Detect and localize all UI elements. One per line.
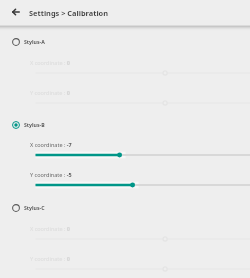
staticText: Stylus-C [24,204,45,211]
staticText: Stylus-A [24,38,45,45]
staticText: Stylus-B [24,121,45,128]
button[interactable]: Stylus-B [0,116,250,134]
button[interactable] [0,179,250,191]
staticText: Settings > Calibration [29,8,109,18]
staticText: Y coordinate : 0 [30,89,70,96]
button[interactable]: Stylus-A [0,33,250,51]
staticText: Y coordinate : 0 [30,255,70,262]
staticText: X coordinate : -7 [30,141,72,148]
staticText: Y coordinate : -5 [30,171,72,178]
staticText: X coordinate : 0 [30,225,70,232]
button[interactable] [0,149,250,161]
staticText: X coordinate : 0 [30,59,70,66]
button[interactable]: Stylus-C [0,199,250,217]
button[interactable]: Back [8,4,24,20]
